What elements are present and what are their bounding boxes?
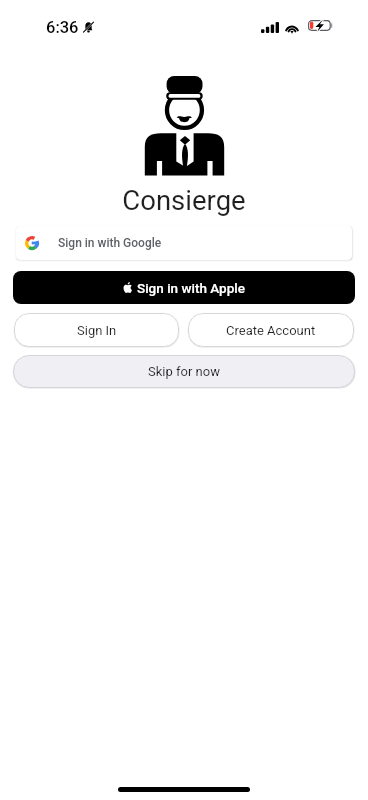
button[interactable]: Sign in with Apple	[13, 271, 355, 304]
staticText: Create Account	[226, 323, 316, 338]
button[interactable]: Create Account	[188, 313, 354, 347]
staticText: 6:36	[46, 18, 79, 37]
staticText: Skip for now	[148, 364, 220, 379]
staticText: Sign in with Google	[58, 236, 162, 250]
button[interactable]: Skip for now	[13, 355, 355, 388]
button[interactable]: Sign In	[14, 313, 179, 347]
staticText: Sign In	[77, 323, 117, 338]
button[interactable]: Sign in with Google	[16, 226, 352, 260]
staticText: Sign in with Apple	[137, 280, 245, 296]
staticText: Consierge	[0, 184, 368, 216]
